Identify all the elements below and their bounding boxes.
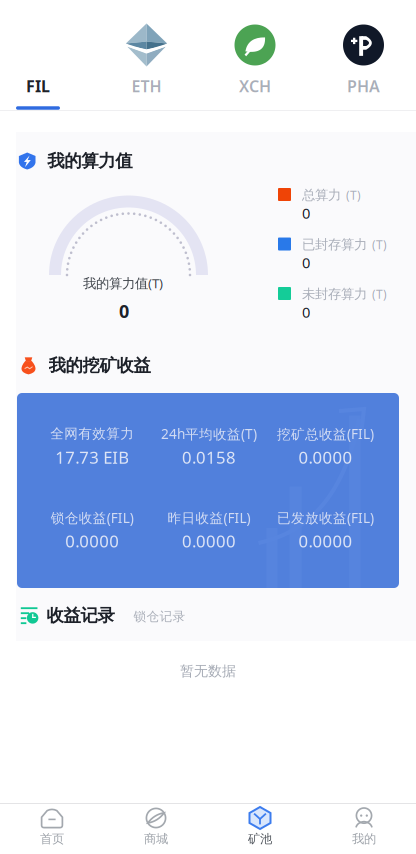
staticText: 矿池	[248, 831, 272, 847]
staticText: 17.73 EIB	[55, 446, 129, 469]
staticText: 我的挖矿收益	[49, 355, 151, 376]
staticText: ETH	[131, 75, 161, 97]
staticText: 0.0000	[65, 530, 119, 552]
staticText: 0.0000	[298, 530, 352, 552]
button[interactable]: 收益记录	[43, 602, 117, 628]
staticText: 首页	[40, 831, 64, 847]
staticText: 0	[302, 252, 310, 272]
staticText: 商城	[144, 831, 168, 847]
button[interactable]: 锁仓记录	[131, 604, 187, 628]
staticText: 0.0158	[182, 446, 236, 469]
staticText: 收益记录	[46, 605, 114, 626]
staticText: 暂无数据	[180, 662, 236, 680]
staticText: (T)	[372, 286, 387, 302]
button[interactable]: PHA	[311, 0, 415, 110]
staticText: (T)	[372, 236, 387, 253]
staticText: 我的算力值	[47, 150, 132, 172]
staticText: 全网有效算力	[50, 425, 134, 442]
staticText: 0	[302, 302, 310, 322]
staticText: 昨日收益(FIL)	[167, 508, 250, 527]
staticText: PHA	[347, 75, 380, 97]
staticText: 我的算力值(T)	[83, 274, 163, 292]
staticText: 未封存算力	[302, 286, 367, 302]
staticText: 锁仓记录	[133, 608, 185, 624]
staticText: 0.0000	[182, 530, 236, 552]
staticText: 挖矿总收益(FIL)	[277, 424, 374, 443]
button[interactable]: Profile	[312, 804, 416, 854]
staticText: (T)	[346, 187, 361, 203]
staticText: XCH	[239, 75, 271, 97]
staticText: 0	[302, 203, 310, 223]
staticText: 24h平均收益(T)	[161, 424, 257, 443]
staticText: 0	[119, 299, 129, 323]
button[interactable]: ETH	[94, 0, 198, 110]
button[interactable]: FIL	[0, 0, 90, 110]
staticText: 已封存算力	[302, 236, 367, 253]
staticText: FIL	[26, 75, 50, 97]
staticText: 已发放收益(FIL)	[277, 508, 374, 527]
button[interactable]: Home	[0, 804, 104, 854]
staticText: 锁仓收益(FIL)	[51, 508, 134, 527]
button[interactable]: Mining pool	[208, 804, 312, 854]
staticText: 0.0000	[298, 446, 352, 469]
button[interactable]: Shop	[104, 804, 208, 854]
staticText: 总算力	[302, 187, 341, 203]
button[interactable]: XCH	[203, 0, 307, 110]
staticText: 我的	[352, 831, 376, 847]
